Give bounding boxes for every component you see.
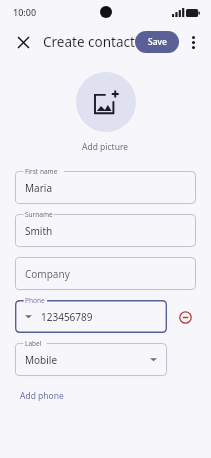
button[interactable]: Remove phone (174, 306, 196, 328)
staticText: Mobile (25, 353, 58, 367)
button[interactable]: Mobile (15, 343, 167, 376)
staticText: First name (25, 167, 58, 176)
button[interactable]: Close (10, 29, 36, 55)
button[interactable]: More options (182, 30, 204, 54)
staticText: Company (25, 267, 70, 281)
button[interactable]: Smith (15, 214, 196, 247)
button[interactable]: Company (15, 257, 196, 290)
staticText: 10:00 (13, 6, 37, 18)
button[interactable]: Save (135, 31, 179, 53)
staticText: Smith (25, 224, 53, 238)
staticText: Label (25, 339, 42, 348)
staticText: Surname (25, 210, 53, 219)
staticText: Phone (25, 296, 45, 305)
button[interactable]: Add phone (15, 387, 69, 405)
button[interactable]: Add picture (76, 72, 136, 132)
button[interactable]: Maria (15, 171, 196, 204)
button[interactable]: 123456789 (15, 300, 167, 333)
staticText: Save (148, 36, 167, 48)
staticText: Add picture (82, 141, 129, 153)
staticText: 123456789 (41, 310, 93, 324)
staticText: Create contact (43, 33, 135, 51)
staticText: Maria (25, 181, 52, 195)
staticText: Add phone (20, 390, 64, 402)
